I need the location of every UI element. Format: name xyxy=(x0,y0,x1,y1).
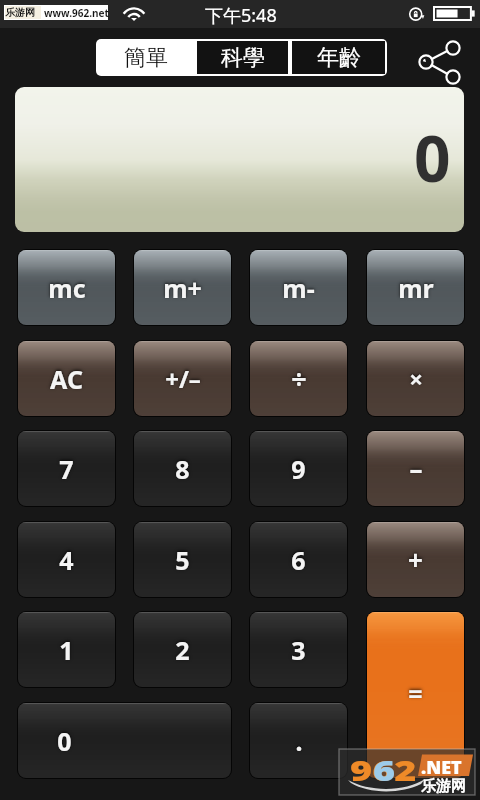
staticText: 簡單 xyxy=(124,44,168,72)
button[interactable]: 科學 xyxy=(195,39,290,76)
staticText: mr xyxy=(398,271,434,305)
button[interactable]: 1 xyxy=(17,611,116,688)
button[interactable]: Share xyxy=(406,36,468,84)
staticText: www.962.net xyxy=(44,6,109,20)
staticText: = xyxy=(408,676,423,710)
staticText: . xyxy=(295,724,303,758)
staticText: 9 xyxy=(291,452,306,486)
staticText: +/– xyxy=(165,362,201,395)
staticText: 4 xyxy=(59,543,74,577)
staticText: m- xyxy=(282,271,315,305)
button[interactable]: mc xyxy=(17,249,116,326)
button[interactable]: . xyxy=(249,702,348,779)
staticText: 7 xyxy=(59,452,74,486)
staticText: × xyxy=(409,362,423,395)
button[interactable]: 9 xyxy=(249,430,348,507)
button[interactable]: 0 xyxy=(17,702,232,779)
button[interactable]: +/– xyxy=(133,340,232,417)
staticText: 962 xyxy=(350,751,417,789)
staticText: 6 xyxy=(291,543,306,577)
staticText: mc xyxy=(48,271,86,305)
button[interactable]: – xyxy=(366,430,465,507)
button[interactable]: = xyxy=(366,611,465,779)
button[interactable]: 2 xyxy=(133,611,232,688)
button[interactable]: 5 xyxy=(133,521,232,598)
button[interactable]: AC xyxy=(17,340,116,417)
button[interactable]: 年齡 xyxy=(290,39,387,76)
staticText: 0 xyxy=(57,724,72,758)
staticText: 1 xyxy=(59,633,74,667)
staticText: 乐游网 xyxy=(421,777,466,796)
staticText: 3 xyxy=(291,633,306,667)
staticText: 科學 xyxy=(221,44,265,72)
staticText: ÷ xyxy=(291,360,307,397)
button[interactable]: mr xyxy=(366,249,465,326)
staticText: 乐游网 xyxy=(5,6,35,19)
button[interactable]: 3 xyxy=(249,611,348,688)
staticText: – xyxy=(409,451,423,486)
button[interactable]: 8 xyxy=(133,430,232,507)
button[interactable]: ÷ xyxy=(249,340,348,417)
staticText: 8 xyxy=(175,452,190,486)
button[interactable]: m+ xyxy=(133,249,232,326)
button[interactable]: 簡單 xyxy=(96,39,195,76)
button[interactable]: + xyxy=(366,521,465,598)
staticText: 5 xyxy=(175,543,190,577)
button[interactable]: × xyxy=(366,340,465,417)
staticText: 2 xyxy=(175,633,190,667)
staticText: 0 xyxy=(414,114,451,201)
staticText: AC xyxy=(50,362,83,396)
staticText: 下午5:48 xyxy=(205,3,277,28)
button[interactable]: 6 xyxy=(249,521,348,598)
button[interactable]: m- xyxy=(249,249,348,326)
button[interactable]: 4 xyxy=(17,521,116,598)
staticText: + xyxy=(408,542,423,577)
staticText: 年齡 xyxy=(317,44,361,72)
staticText: .NET xyxy=(421,755,462,780)
staticText: 6 xyxy=(373,751,396,789)
staticText: m+ xyxy=(163,271,202,305)
button[interactable]: 7 xyxy=(17,430,116,507)
